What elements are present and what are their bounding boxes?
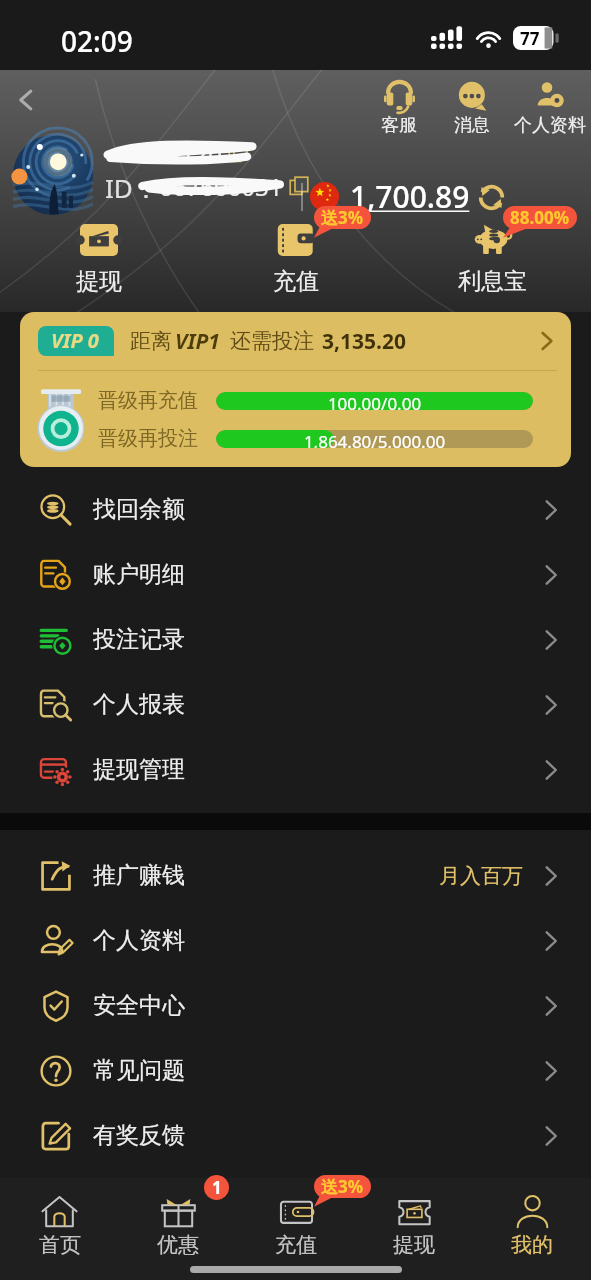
staticText: 消息 [454,114,490,137]
button[interactable]: 个人报表 [0,672,591,737]
button[interactable]: 投注记录 [0,607,591,672]
staticText: 个人资料 [93,926,185,955]
staticText: 利息宝 [458,267,527,296]
staticText: 77 [520,27,540,50]
staticText: 送3% [321,206,364,229]
staticText: 提现 [76,267,122,296]
staticText: 667600031 [159,170,283,202]
staticText: 个人报表 [93,690,185,719]
staticText: 首页 [39,1232,81,1257]
staticText: 客服 [381,114,417,137]
button[interactable]: 提现 [0,224,197,296]
button[interactable]: 客服 [362,80,436,137]
staticText: 100.00/0.00 [216,392,533,410]
staticText: 1,700.89 [350,176,470,217]
staticText: 个人资料 [514,114,586,137]
staticText: 推广赚钱 [93,861,185,890]
button[interactable]: 消息 [436,80,508,137]
staticText: 02:09 [61,22,133,60]
button[interactable]: 提现管理 [0,737,591,802]
button[interactable]: 送3% [197,224,394,296]
button[interactable]: 安全中心 [0,973,591,1038]
staticText: 1,864.80/5,000.00 [216,430,533,448]
staticText: 月入百万 [439,863,523,889]
staticText: 优惠 [157,1232,199,1257]
staticText: 有奖反馈 [93,1121,185,1150]
staticText: 提现管理 [93,755,185,784]
staticText: 充值 [275,1232,317,1257]
button[interactable]: 送3% [237,1195,355,1257]
staticText: 88.00% [510,206,570,229]
button[interactable]: 账户明细 [0,542,591,607]
button[interactable]: 1 [119,1195,237,1257]
staticText: 找回余额 [93,495,185,524]
button[interactable]: 88.00% [394,224,591,296]
staticText: 充值 [273,267,319,296]
button[interactable]: 找回余额 [0,477,591,542]
button[interactable]: 推广赚钱 [0,843,591,908]
staticText: 常见问题 [93,1056,185,1085]
staticText: ID： [105,170,159,202]
staticText: 晋级再充值 [98,388,198,413]
staticText: 提现 [393,1232,435,1257]
button[interactable]: 首页 [0,1195,119,1257]
button[interactable]: 个人资料 [508,80,591,137]
button[interactable]: Refresh [476,182,506,212]
button[interactable]: 提现 [355,1195,473,1257]
staticText: 投注记录 [93,625,185,654]
button[interactable]: 个人资料 [0,908,591,973]
staticText: 4120 [167,137,222,169]
staticText: 3,135.20 [322,327,406,356]
button[interactable]: Back [4,78,48,122]
staticText: 我的 [511,1232,553,1257]
staticText: 安全中心 [93,991,185,1020]
staticText: VIP1 [175,327,220,356]
staticText: 送3% [321,1175,364,1198]
staticText: 距离 [130,328,172,354]
button[interactable]: VIP 0 [20,312,571,467]
staticText: 还需投注 [230,328,314,354]
staticText: 1 [212,1176,222,1199]
staticText: 晋级再投注 [98,426,198,451]
button[interactable]: 有奖反馈 [0,1103,591,1168]
button[interactable]: 我的 [473,1195,591,1257]
staticText: VIP 0 [51,327,99,354]
button[interactable]: 常见问题 [0,1038,591,1103]
staticText: 账户明细 [93,560,185,589]
